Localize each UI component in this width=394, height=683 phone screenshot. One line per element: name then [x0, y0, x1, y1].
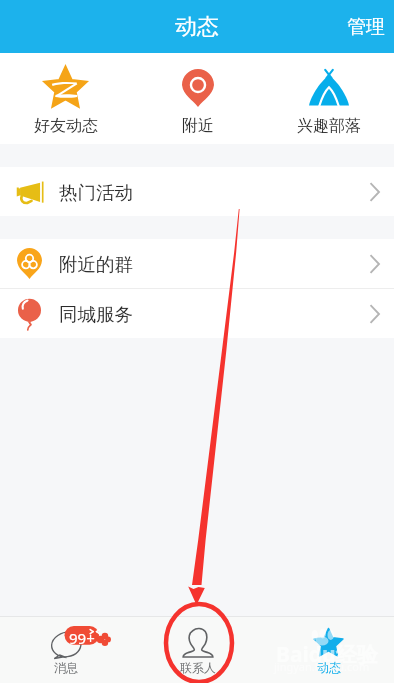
- staticText: 消息: [54, 660, 78, 675]
- button[interactable]: 兴趣部落: [263, 61, 394, 136]
- staticText: 热门活动: [59, 181, 133, 204]
- staticText: jingyan.baidu.com: [274, 659, 370, 674]
- button[interactable]: 好友动态: [0, 61, 132, 136]
- button[interactable]: 热门活动: [0, 167, 394, 216]
- button[interactable]: 动态: [263, 626, 394, 675]
- staticText: 兴趣部落: [297, 116, 361, 136]
- staticText: 动态: [317, 660, 341, 675]
- button[interactable]: 99+: [0, 626, 132, 675]
- staticText: 管理: [347, 15, 385, 39]
- button[interactable]: 附近: [132, 61, 263, 136]
- staticText: 附近的群: [59, 253, 133, 276]
- staticText: 附近: [182, 116, 214, 136]
- staticText: Baidu经验: [276, 640, 378, 669]
- staticText: 99+: [69, 628, 95, 648]
- staticText: 好友动态: [34, 116, 98, 136]
- button[interactable]: 联系人: [132, 626, 263, 675]
- staticText: 联系人: [180, 660, 216, 675]
- button[interactable]: 同城服务: [0, 289, 394, 338]
- button[interactable]: 附近的群: [0, 239, 394, 288]
- staticText: 动态: [175, 13, 219, 41]
- staticText: 同城服务: [59, 303, 133, 326]
- button[interactable]: 管理: [338, 0, 394, 53]
